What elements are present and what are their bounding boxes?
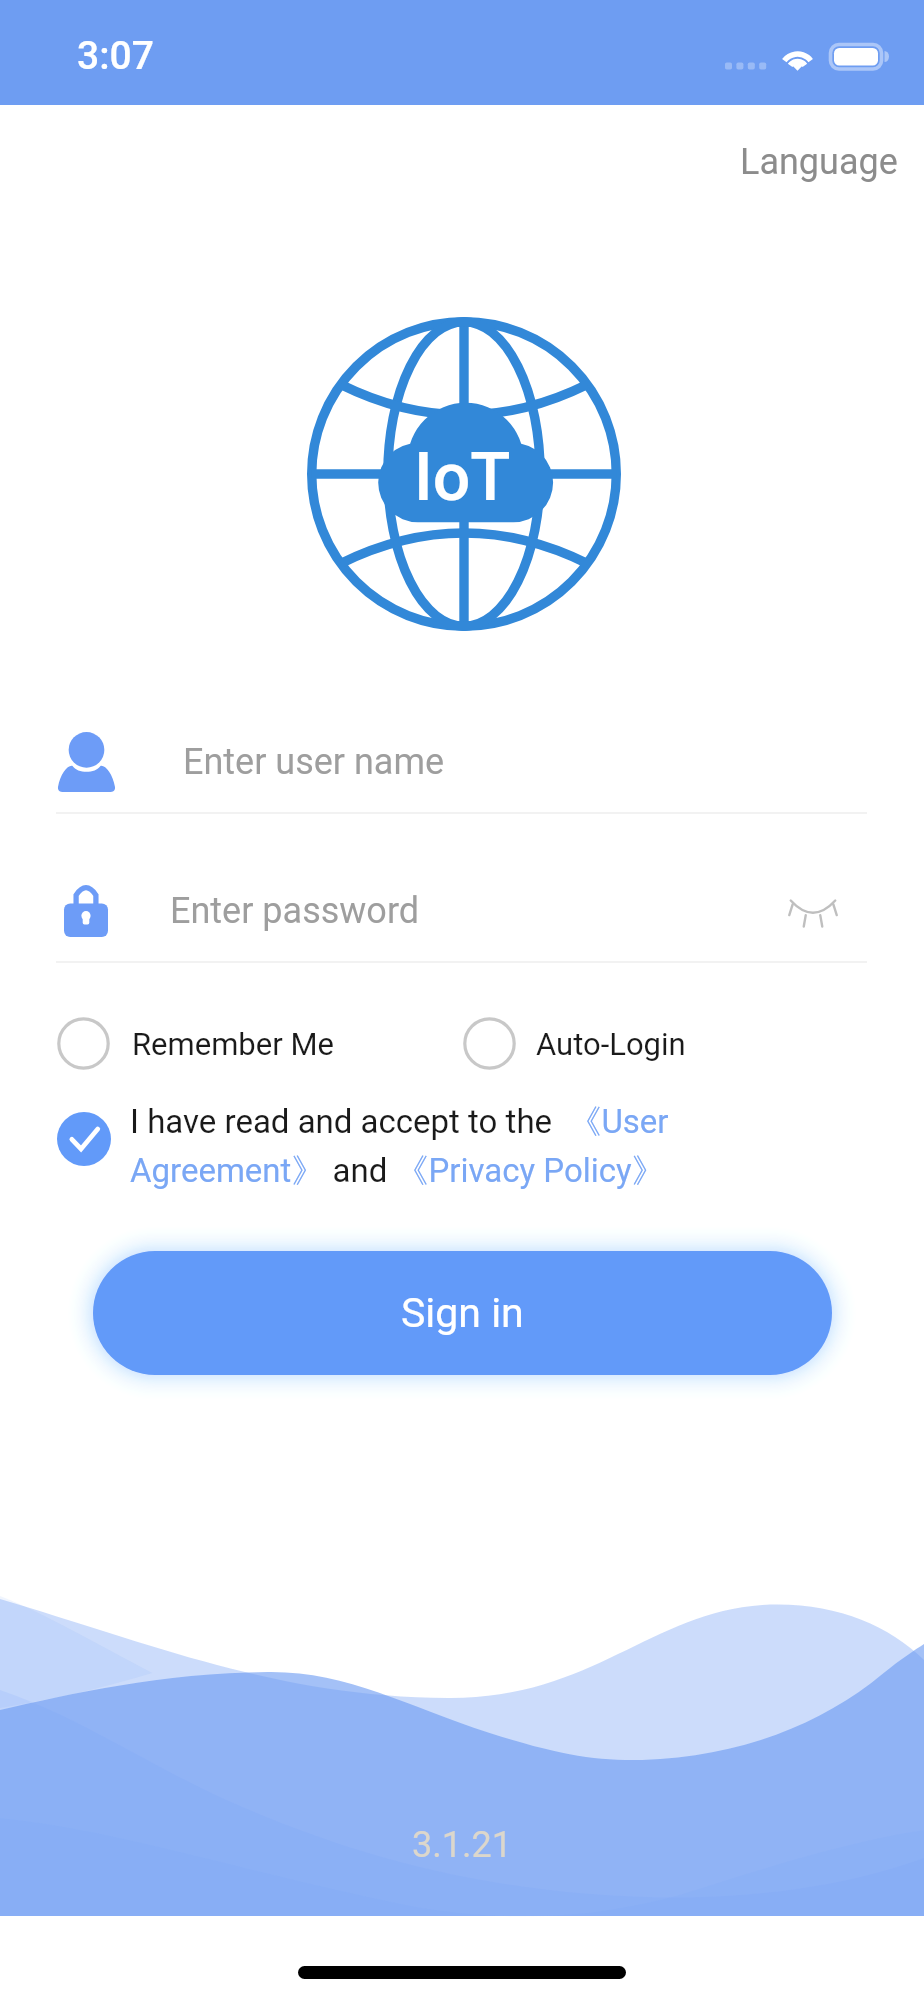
staticText: Language <box>740 141 898 183</box>
button[interactable]: Language <box>714 133 924 191</box>
button[interactable]: Accept agreement <box>57 1112 111 1166</box>
staticText: 3.1.21 <box>412 1824 512 1866</box>
staticText: Enter password <box>170 890 420 932</box>
button[interactable]: Auto-Login <box>463 1017 924 1070</box>
staticText: IoT <box>414 439 511 516</box>
staticText: Sign in <box>401 1289 524 1337</box>
staticText: 3:07 <box>77 33 154 79</box>
button[interactable]: Show password <box>770 868 856 954</box>
staticText: Auto-Login <box>536 1026 686 1062</box>
button[interactable]: Sign in <box>93 1251 832 1375</box>
staticText: Remember Me <box>132 1026 334 1062</box>
staticText: I have read and accept to the 《User Agre… <box>130 1101 675 1192</box>
button[interactable]: Remember Me <box>57 1017 334 1070</box>
staticText: Enter user name <box>183 741 445 783</box>
